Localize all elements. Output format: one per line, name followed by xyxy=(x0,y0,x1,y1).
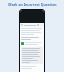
staticText: Mark an Incorrect Question xyxy=(8,2,57,7)
button[interactable] xyxy=(22,48,42,63)
other: Correct xyxy=(21,42,24,45)
button[interactable]: Mark an Incorrect Question xyxy=(0,0,64,9)
button[interactable]: Correct xyxy=(21,42,43,45)
button[interactable]: Back xyxy=(21,23,43,27)
